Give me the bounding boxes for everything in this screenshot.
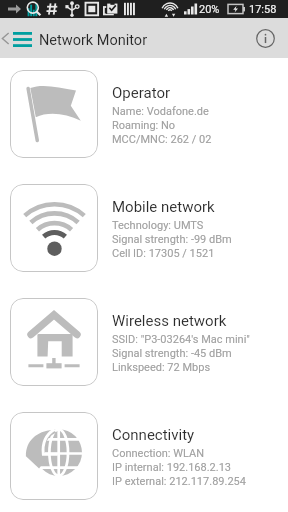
staticText: IP internal: 192.168.2.13 — [112, 461, 232, 474]
staticText: 20% — [199, 3, 220, 16]
button[interactable]: Mobile network — [0, 184, 288, 272]
staticText: Cell ID: 17305 / 1521 — [112, 247, 215, 260]
staticText: SSID: "P3-03264's Mac mini" — [112, 333, 250, 346]
button[interactable]: Open navigation drawer — [11, 20, 34, 56]
staticText: Name: Vodafone.de — [112, 105, 209, 118]
staticText: Technology: UMTS — [112, 219, 204, 232]
staticText: Signal strength: -99 dBm — [112, 233, 232, 246]
staticText: Connection: WLAN — [112, 447, 204, 460]
staticText: Linkspeed: 72 Mbps — [112, 361, 211, 374]
staticText: Roaming: No — [112, 119, 176, 132]
button[interactable]: Wireless network — [0, 298, 288, 386]
staticText: Connectivity — [112, 426, 195, 444]
staticText: MCC/MNC: 262 / 02 — [112, 133, 212, 146]
staticText: Mobile network — [112, 198, 215, 216]
staticText: Signal strength: -45 dBm — [112, 347, 232, 360]
button[interactable]: Navigate up — [0, 20, 11, 56]
staticText: Wireless network — [112, 312, 227, 330]
button[interactable]: Operator — [0, 70, 288, 158]
staticText: Network Monitor — [39, 32, 148, 49]
button[interactable]: Info — [248, 21, 282, 55]
button[interactable]: Connectivity — [0, 412, 288, 500]
staticText: Operator — [112, 84, 171, 102]
staticText: 17:58 — [249, 3, 277, 16]
staticText: IP external: 212.117.89.254 — [112, 475, 246, 488]
